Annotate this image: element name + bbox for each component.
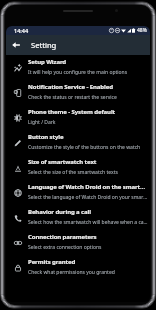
staticText: Select extra connection options [28,244,102,251]
staticText: Select the size of the smartwatch texts [28,169,118,176]
staticText: Setting [31,40,57,50]
button[interactable]: Notification Service - Enabled [6,80,150,105]
button[interactable]: Phone theme - System default [6,105,150,130]
button[interactable]: Behavior during a call [6,205,150,230]
staticText: Setup Wizard [28,58,67,66]
button[interactable]: Back [6,35,26,55]
staticText: Permits granted [28,258,76,266]
staticText: Size of smartwatch text [28,158,97,166]
button[interactable]: Connection parameters [6,230,150,255]
staticText: 48% [137,27,147,34]
button[interactable]: Setup Wizard [6,55,150,80]
staticText: Select the language of Watch Droid on yo… [28,194,148,201]
staticText: Button style [28,133,64,141]
staticText: Select how the smartwatch will behave wh… [28,219,148,226]
button[interactable]: Size of smartwatch text [6,155,150,180]
button[interactable]: Button style [6,130,150,155]
button[interactable]: Permits granted [6,255,150,280]
button[interactable]: Language of Watch Droid on the smartwatc… [6,180,150,205]
staticText: Language of Watch Droid on the smartwatc… [28,183,148,191]
staticText: Customize the style of the buttons on th… [28,144,141,151]
staticText: Behavior during a call [28,208,91,216]
staticText: Connection parameters [28,233,97,241]
staticText: Check the status or restart the service [28,94,117,101]
staticText: Check what permissions you granted [28,269,115,276]
staticText: It will help you configure the main opti… [28,69,128,76]
staticText: Phone theme - System default [28,108,116,116]
staticText: Notification Service - Enabled [28,83,113,91]
staticText: 14:44 [14,27,29,34]
staticText: Light / Dark [28,119,56,126]
